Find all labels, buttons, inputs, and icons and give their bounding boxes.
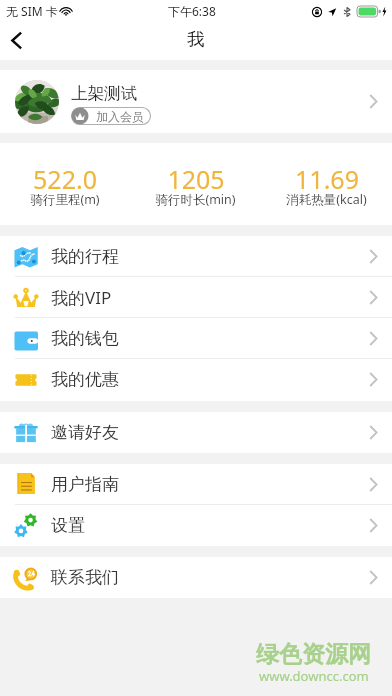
staticText: 无 SIM 卡 xyxy=(6,3,58,19)
staticText: 我的行程 xyxy=(51,246,119,267)
button[interactable]: 我的VIP xyxy=(0,277,392,318)
staticText: 加入会员 xyxy=(96,109,144,124)
button[interactable]: Back xyxy=(0,24,34,58)
staticText: 我的优惠 xyxy=(51,369,119,390)
staticText: www.downcc.com xyxy=(259,667,369,685)
button[interactable]: 联系我们 xyxy=(0,557,392,598)
button[interactable]: 用户指南 xyxy=(0,464,392,505)
staticText: 设置 xyxy=(51,515,85,536)
staticText: 我的钱包 xyxy=(51,328,119,349)
staticText: 骑行时长(min) xyxy=(155,191,236,208)
staticText: 我 xyxy=(187,28,205,50)
staticText: 下午6:38 xyxy=(168,3,216,19)
staticText: 上架测试 xyxy=(71,83,137,104)
staticText: 绿色资源网 xyxy=(256,640,371,669)
button[interactable]: 我的钱包 xyxy=(0,318,392,359)
button[interactable]: 设置 xyxy=(0,505,392,546)
staticText: 522.0 xyxy=(33,162,97,196)
staticText: 用户指南 xyxy=(51,474,119,495)
staticText: 11.69 xyxy=(295,162,359,196)
button[interactable]: 邀请好友 xyxy=(0,412,392,453)
button[interactable]: 上架测试 xyxy=(0,70,392,133)
staticText: 联系我们 xyxy=(51,567,119,588)
staticText: 邀请好友 xyxy=(51,422,119,443)
staticText: 我的VIP xyxy=(51,286,112,309)
button[interactable]: 我的优惠 xyxy=(0,359,392,400)
staticText: 消耗热量(kcal) xyxy=(286,191,367,208)
button[interactable]: 我的行程 xyxy=(0,236,392,277)
staticText: 骑行里程(m) xyxy=(30,191,100,208)
staticText: 1205 xyxy=(167,162,225,196)
button[interactable]: 加入会员 xyxy=(71,107,151,125)
